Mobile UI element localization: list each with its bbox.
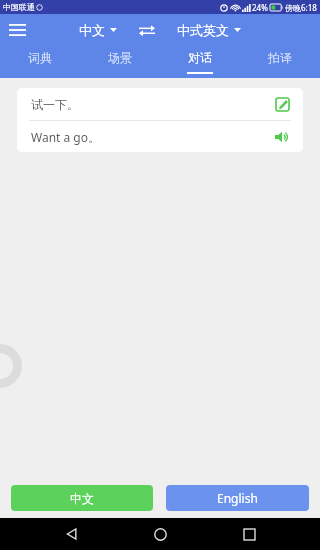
- button[interactable]: 对话: [160, 46, 240, 78]
- staticText: 中文: [70, 491, 94, 506]
- button[interactable]: Want a go。: [17, 121, 303, 152]
- button[interactable]: 中式英文: [173, 18, 245, 42]
- staticText: Want a go。: [31, 129, 271, 145]
- button[interactable]: 词典: [0, 46, 80, 78]
- button[interactable]: Home: [143, 518, 177, 550]
- button[interactable]: Play audio: [271, 126, 293, 148]
- staticText: 试一下。: [31, 97, 271, 112]
- button[interactable]: 场景: [80, 46, 160, 78]
- button[interactable]: 拍译: [240, 46, 320, 78]
- staticText: 傍晚6:18: [285, 2, 317, 13]
- staticText: 24%: [252, 2, 268, 13]
- button[interactable]: Swap languages: [135, 18, 159, 42]
- staticText: English: [217, 490, 258, 506]
- staticText: 拍译: [268, 50, 292, 65]
- button[interactable]: 中文: [75, 18, 121, 42]
- staticText: 中文: [79, 22, 105, 38]
- button[interactable]: 中文: [11, 485, 153, 511]
- staticText: 中式英文: [177, 22, 229, 38]
- staticText: 中国联通: [3, 2, 35, 12]
- button[interactable]: Edit: [271, 93, 293, 115]
- button[interactable]: 试一下。: [17, 88, 303, 120]
- button[interactable]: Recent apps: [232, 518, 266, 550]
- staticText: 对话: [188, 50, 212, 65]
- staticText: 场景: [108, 50, 132, 65]
- button[interactable]: Menu: [5, 18, 29, 42]
- button[interactable]: English: [166, 485, 309, 511]
- button[interactable]: Back: [55, 518, 89, 550]
- staticText: 词典: [28, 50, 52, 65]
